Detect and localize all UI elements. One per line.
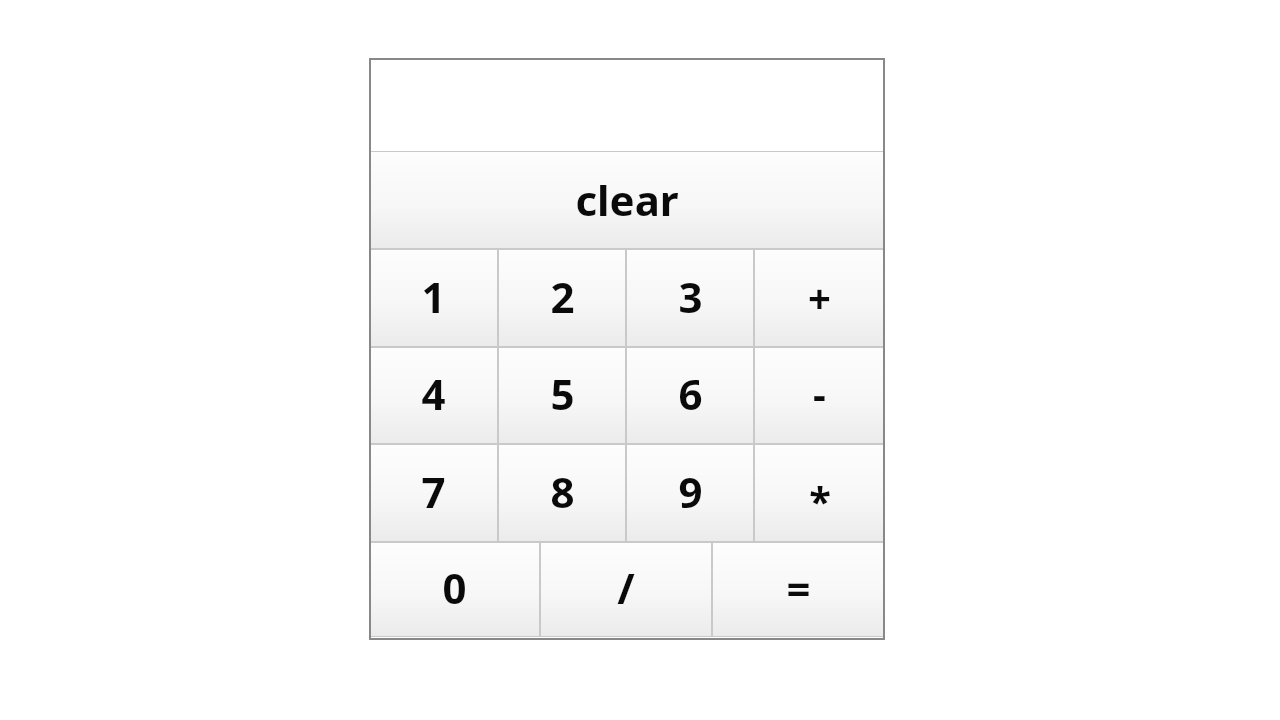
- staticText: clear: [575, 171, 679, 228]
- button[interactable]: /: [540, 542, 712, 637]
- staticText: /: [617, 559, 635, 616]
- staticText: 1: [421, 268, 446, 325]
- button[interactable]: 4: [369, 347, 498, 444]
- staticText: 6: [678, 365, 703, 422]
- staticText: +: [808, 270, 831, 324]
- staticText: 8: [550, 463, 575, 520]
- button[interactable]: -: [754, 347, 885, 444]
- button[interactable]: 2: [498, 249, 626, 347]
- button[interactable]: [369, 58, 885, 151]
- staticText: 5: [550, 365, 575, 422]
- staticText: 0: [442, 559, 467, 616]
- button[interactable]: 3: [626, 249, 754, 347]
- staticText: 7: [421, 463, 446, 520]
- staticText: 9: [678, 463, 703, 520]
- button[interactable]: *: [754, 444, 885, 542]
- button[interactable]: 1: [369, 249, 498, 347]
- button[interactable]: =: [712, 542, 885, 637]
- staticText: -: [813, 366, 826, 420]
- button[interactable]: 0: [369, 542, 540, 637]
- button[interactable]: 6: [626, 347, 754, 444]
- button[interactable]: +: [754, 249, 885, 347]
- staticText: =: [786, 559, 811, 616]
- staticText: 4: [421, 365, 446, 422]
- button[interactable]: 7: [369, 444, 498, 542]
- staticText: 2: [550, 268, 575, 325]
- button[interactable]: 8: [498, 444, 626, 542]
- button[interactable]: clear: [369, 151, 885, 249]
- button[interactable]: 5: [498, 347, 626, 444]
- staticText: 3: [678, 268, 703, 325]
- button[interactable]: 9: [626, 444, 754, 542]
- staticText: *: [809, 473, 831, 527]
